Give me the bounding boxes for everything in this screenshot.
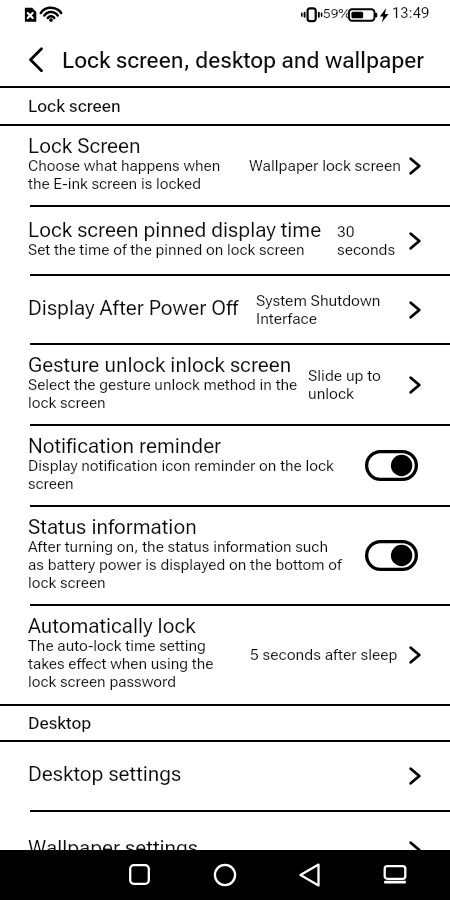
staticText: After turning on, the status information… xyxy=(28,538,342,592)
button[interactable]: Notification reminder xyxy=(0,426,450,505)
staticText: Lock screen, desktop and wallpaper xyxy=(62,47,425,73)
button[interactable]: Status information xyxy=(0,507,450,604)
staticText: Select the gesture unlock method in the … xyxy=(28,376,298,412)
button[interactable]: Wallpaper settings xyxy=(0,812,450,887)
staticText: Set the time of the pinned on lock scree… xyxy=(28,241,305,259)
staticText: Gesture unlock inlock screen xyxy=(28,353,292,377)
staticText: Display After Power Off xyxy=(28,296,239,320)
staticText: Lock screen xyxy=(28,96,121,116)
staticText: 30 seconds xyxy=(337,223,403,259)
button[interactable]: Lock screen pinned display time xyxy=(0,207,450,274)
button[interactable]: Home xyxy=(201,850,249,900)
staticText: Wallpaper lock screen xyxy=(249,157,403,175)
staticText: Desktop settings xyxy=(28,762,182,786)
staticText: Notification reminder xyxy=(28,434,222,458)
staticText: 13:49 xyxy=(392,4,430,21)
staticText: 5 seconds after sleep xyxy=(250,646,403,664)
staticText: Desktop xyxy=(28,713,92,733)
staticText: Lock screen pinned display time xyxy=(28,218,322,242)
staticText: Status information xyxy=(28,515,197,539)
button[interactable]: Lock Screen xyxy=(0,126,450,205)
button[interactable]: Automatically lock xyxy=(0,606,450,704)
button[interactable]: Back xyxy=(286,850,334,900)
staticText: Choose what happens when the E-ink scree… xyxy=(28,157,221,193)
button[interactable]: Display After Power Off xyxy=(0,276,450,343)
staticText: The auto-lock time setting takes effect … xyxy=(28,637,214,691)
button[interactable]: Desktop settings xyxy=(0,742,450,810)
staticText: Lock Screen xyxy=(28,134,141,158)
staticText: System Shutdown Interface xyxy=(256,292,403,328)
button[interactable]: Back xyxy=(14,39,58,83)
staticText: Wallpaper settings xyxy=(28,836,199,860)
staticText: Slide up to unlock xyxy=(308,367,403,403)
staticText: Display notification icon reminder on th… xyxy=(28,457,334,493)
staticText: 59% xyxy=(323,5,351,21)
button[interactable]: Gesture unlock inlock screen xyxy=(0,345,450,424)
staticText: Automatically lock xyxy=(28,614,196,638)
button[interactable]: Screenshot xyxy=(371,850,419,900)
button[interactable]: Recents xyxy=(116,850,164,900)
